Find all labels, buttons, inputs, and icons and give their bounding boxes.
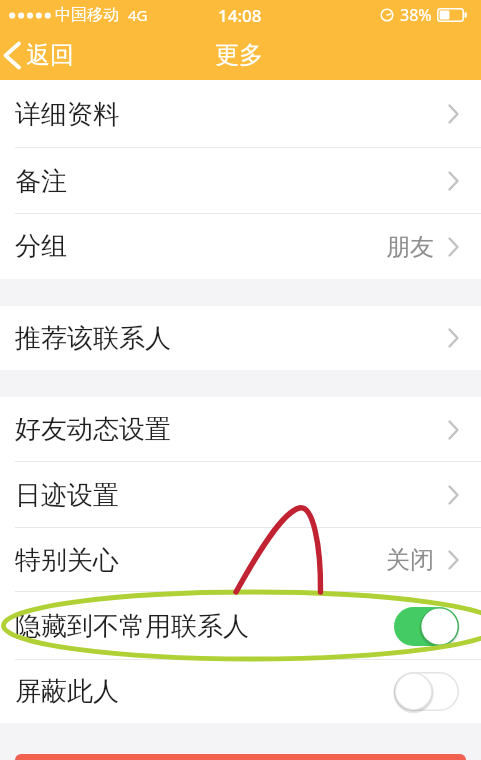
- button[interactable]: 日迹设置: [0, 462, 481, 528]
- staticText: 分组: [15, 230, 67, 263]
- staticText: 详细资料: [15, 98, 119, 131]
- staticText: 更多: [215, 40, 263, 70]
- staticText: 中国移动: [55, 5, 119, 25]
- staticText: 好友动态设置: [15, 413, 171, 446]
- staticText: 推荐该联系人: [15, 322, 171, 355]
- button[interactable]: Toggle on: [394, 607, 459, 646]
- staticText: 屏蔽此人: [15, 675, 119, 708]
- button[interactable]: 删除好友: [15, 754, 466, 760]
- button[interactable]: 隐藏到不常用联系人: [0, 592, 481, 660]
- button[interactable]: 推荐该联系人: [0, 306, 481, 370]
- button[interactable]: 屏蔽此人: [0, 660, 481, 723]
- staticText: 关闭: [386, 545, 434, 575]
- staticText: 特别关心: [15, 544, 119, 577]
- staticText: 朋友: [386, 232, 434, 262]
- staticText: 38%: [400, 4, 432, 26]
- staticText: 4G: [128, 5, 148, 25]
- button[interactable]: 分组: [0, 214, 481, 279]
- staticText: 返回: [26, 40, 74, 70]
- staticText: 14:08: [218, 4, 262, 27]
- staticText: 备注: [15, 165, 67, 198]
- button[interactable]: 备注: [0, 148, 481, 214]
- button[interactable]: 详细资料: [0, 80, 481, 148]
- staticText: 隐藏到不常用联系人: [15, 610, 249, 643]
- button[interactable]: Back: [3, 40, 74, 70]
- other: Back: [3, 41, 21, 70]
- button[interactable]: 特别关心: [0, 528, 481, 592]
- button[interactable]: Toggle off: [394, 672, 459, 711]
- staticText: 日迹设置: [15, 479, 119, 512]
- button[interactable]: 好友动态设置: [0, 397, 481, 462]
